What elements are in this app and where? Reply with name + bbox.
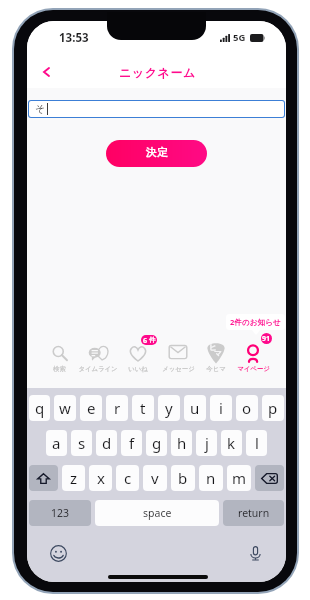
button[interactable]: j <box>196 430 217 456</box>
button[interactable]: g <box>146 430 167 456</box>
staticText: i <box>219 398 223 418</box>
button[interactable]: k <box>221 430 242 456</box>
button[interactable]: 123 <box>29 500 91 526</box>
staticText: o <box>242 398 252 418</box>
button[interactable]: 決定 <box>106 140 207 167</box>
button[interactable]: Back <box>31 56 61 87</box>
staticText: 今ヒマ <box>206 365 226 373</box>
staticText: ニックネーム <box>119 66 196 81</box>
button[interactable]: return <box>223 500 284 526</box>
staticText: r <box>114 398 121 418</box>
staticText: w <box>59 398 71 418</box>
button[interactable]: ヒ <box>196 334 236 374</box>
staticText: タイムライン <box>78 365 118 373</box>
staticText: g <box>152 433 162 453</box>
staticText: b <box>178 468 188 488</box>
staticText: l <box>255 433 259 453</box>
button[interactable]: v <box>143 465 167 491</box>
button[interactable]: space <box>95 500 219 526</box>
staticText: n <box>206 468 216 488</box>
staticText: h <box>177 433 187 453</box>
staticText: p <box>268 398 278 418</box>
staticText: e <box>87 398 96 418</box>
button[interactable]: f <box>121 430 142 456</box>
button[interactable]: i <box>210 395 232 421</box>
button[interactable]: a <box>46 430 67 456</box>
staticText: 件 <box>149 336 156 344</box>
staticText: マイページ <box>237 365 270 373</box>
staticText: j <box>205 433 209 453</box>
button[interactable]: b <box>171 465 195 491</box>
button[interactable]: o <box>236 395 258 421</box>
staticText: メッセージ <box>162 365 195 373</box>
button[interactable]: h <box>171 430 192 456</box>
button[interactable]: y <box>158 395 180 421</box>
staticText: q <box>35 398 45 418</box>
staticText: 123 <box>51 506 70 520</box>
staticText: マ <box>214 349 222 359</box>
button[interactable]: m <box>227 465 251 491</box>
staticText: u <box>190 398 200 418</box>
staticText: 6 <box>143 335 148 345</box>
button[interactable]: 検索 <box>39 334 79 374</box>
button[interactable]: d <box>96 430 117 456</box>
staticText: 5G <box>233 31 246 44</box>
staticText: a <box>52 433 61 453</box>
button[interactable]: w <box>54 395 76 421</box>
staticText: t <box>140 398 146 418</box>
staticText: いいね <box>128 365 148 373</box>
button[interactable]: c <box>116 465 139 491</box>
button[interactable]: q <box>29 395 50 421</box>
button[interactable]: p <box>262 395 284 421</box>
button[interactable]: マイページ <box>233 334 273 374</box>
staticText: 2件のお知らせ <box>230 317 281 327</box>
staticText: x <box>97 468 105 488</box>
button[interactable]: いいね <box>118 334 158 374</box>
staticText: 決定 <box>146 146 168 159</box>
staticText: s <box>78 433 86 453</box>
staticText: f <box>129 433 135 453</box>
staticText: v <box>151 468 159 488</box>
button[interactable]: Backspace <box>255 465 284 491</box>
button[interactable]: e <box>80 395 102 421</box>
button[interactable]: r <box>106 395 128 421</box>
button[interactable]: u <box>184 395 206 421</box>
staticText: そ <box>35 103 46 115</box>
staticText: space <box>143 506 172 520</box>
staticText: y <box>165 398 173 418</box>
button[interactable]: タイムライン <box>78 334 118 374</box>
button[interactable]: 2件のお知らせ <box>226 314 285 330</box>
staticText: m <box>232 468 247 488</box>
staticText: ヒ <box>209 343 217 353</box>
button[interactable]: メッセージ <box>158 334 198 374</box>
button[interactable]: Dictation <box>244 542 266 564</box>
button[interactable]: l <box>246 430 267 456</box>
staticText: d <box>102 433 112 453</box>
staticText: 検索 <box>53 365 66 373</box>
staticText: c <box>124 468 132 488</box>
staticText: k <box>227 433 236 453</box>
button[interactable]: n <box>199 465 223 491</box>
button[interactable]: Emoji keyboard <box>47 542 69 564</box>
button[interactable]: Shift <box>29 465 58 491</box>
button[interactable]: t <box>132 395 154 421</box>
button[interactable]: x <box>89 465 112 491</box>
button[interactable]: そ <box>28 100 285 118</box>
staticText: return <box>238 506 270 520</box>
button[interactable]: s <box>71 430 92 456</box>
staticText: 13:53 <box>59 30 89 46</box>
button[interactable]: z <box>62 465 85 491</box>
staticText: 91 <box>262 334 271 344</box>
staticText: z <box>70 468 78 488</box>
